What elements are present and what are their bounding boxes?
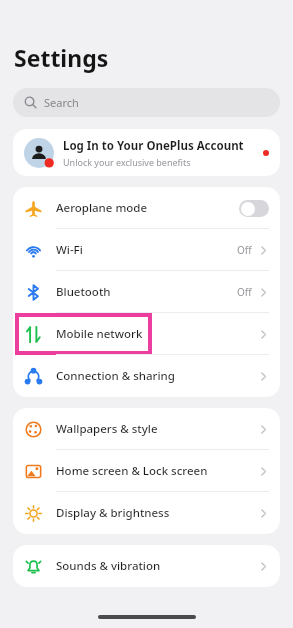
staticText: Mobile network: [56, 326, 258, 342]
staticText: Settings: [14, 42, 109, 73]
button[interactable]: Aeroplane mode toggle: [239, 200, 269, 217]
staticText: Connection & sharing: [56, 368, 258, 384]
button[interactable]: Display & brightness: [13, 492, 280, 534]
button[interactable]: Mobile network: [13, 313, 280, 355]
staticText: Bluetooth: [56, 284, 237, 300]
button[interactable]: Wi-Fi: [13, 229, 280, 271]
staticText: Aeroplane mode: [56, 200, 239, 216]
button[interactable]: Bluetooth: [13, 271, 280, 313]
staticText: Wallpapers & style: [56, 421, 258, 437]
staticText: Log In to Your OnePlus Account: [63, 138, 244, 154]
button[interactable]: Search: [13, 88, 280, 117]
staticText: Home screen & Lock screen: [56, 463, 258, 479]
staticText: Off: [237, 243, 252, 257]
button[interactable]: Wallpapers & style: [13, 408, 280, 450]
staticText: Off: [237, 285, 252, 299]
staticText: Unlock your exclusive benefits: [63, 156, 191, 168]
staticText: Display & brightness: [56, 505, 258, 521]
button[interactable]: Connection & sharing: [13, 355, 280, 397]
button[interactable]: Sounds & vibration: [13, 545, 280, 587]
staticText: Wi-Fi: [56, 242, 237, 258]
staticText: Search: [44, 95, 79, 110]
button[interactable]: Aeroplane mode: [13, 187, 280, 229]
button[interactable]: Home screen & Lock screen: [13, 450, 280, 492]
staticText: Sounds & vibration: [56, 558, 258, 574]
button[interactable]: Log In to Your OnePlus Account: [13, 129, 280, 176]
